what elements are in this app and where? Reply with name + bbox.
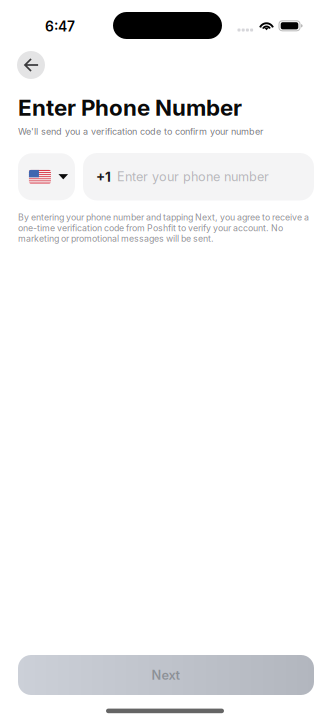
button[interactable]: Enter your phone number — [83, 153, 314, 200]
button[interactable]: Back — [17, 51, 45, 79]
staticText: Enter your phone number — [117, 169, 269, 184]
staticText: Enter Phone Number — [18, 94, 242, 121]
staticText: 6:47 — [45, 18, 75, 35]
staticText: By entering your phone number and tappin… — [18, 212, 309, 244]
staticText: +1 — [96, 168, 111, 185]
staticText: We'll send you a verification code to co… — [18, 126, 263, 137]
staticText: Next — [151, 667, 180, 683]
button[interactable]: Next — [18, 655, 314, 695]
button[interactable]: Select country code — [18, 153, 75, 200]
